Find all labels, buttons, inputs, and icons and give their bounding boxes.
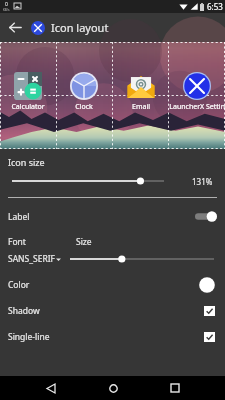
staticText: Icon layout — [51, 20, 109, 35]
button[interactable]: Label — [0, 198, 225, 236]
staticText: SANS_SERIF — [8, 253, 55, 265]
button[interactable]: SANS_SERIF — [8, 253, 61, 265]
button[interactable]: Calculator — [0, 72, 56, 111]
button[interactable]: Email — [113, 72, 169, 111]
staticText: 131% — [192, 176, 213, 186]
button[interactable]: Shadow — [0, 298, 225, 324]
button[interactable]: Home — [101, 376, 125, 400]
staticText: Single-line — [8, 331, 50, 343]
button[interactable] — [195, 211, 217, 222]
staticText: KB/s — [3, 8, 10, 12]
button[interactable]: LauncherX Settin.. — [169, 72, 225, 111]
staticText: 6:53 — [207, 1, 223, 12]
staticText: Calculator — [11, 102, 45, 111]
button[interactable]: Clock — [56, 72, 112, 111]
staticText: Clock — [75, 102, 93, 111]
button[interactable]: Back — [39, 376, 63, 400]
staticText: Email — [132, 102, 150, 111]
staticText: Label — [8, 211, 30, 223]
button[interactable]: Recent apps — [163, 376, 187, 400]
staticText: Icon size — [8, 156, 45, 168]
staticText: Size — [76, 236, 92, 248]
staticText: LauncherX Settin.. — [169, 102, 225, 111]
staticText: Color — [8, 279, 30, 291]
staticText: 0 — [5, 1, 8, 8]
staticText: Shadow — [8, 305, 40, 317]
button[interactable]: Single-line — [0, 324, 225, 350]
staticText: Font — [8, 236, 26, 248]
button[interactable]: Color — [0, 272, 225, 298]
button[interactable]: Back — [0, 13, 30, 42]
